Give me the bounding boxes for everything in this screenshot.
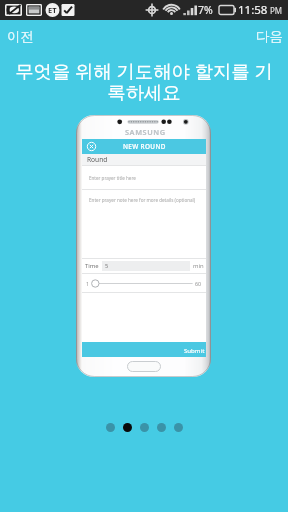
button[interactable]: 이전	[0, 20, 46, 52]
staticText: PM	[270, 5, 283, 16]
staticText: ET	[48, 5, 57, 15]
button[interactable]: Home	[127, 361, 161, 372]
staticText: Enter prayer note here for more details …	[89, 197, 196, 203]
button[interactable]: Page 3	[140, 423, 149, 432]
staticText: 이전	[7, 28, 34, 45]
staticText: Enter prayer title here	[89, 175, 136, 181]
staticText: 5	[105, 262, 109, 270]
button[interactable]: Submit	[82, 342, 206, 357]
button[interactable]: Page 1	[106, 423, 115, 432]
button[interactable]: 다음	[244, 20, 288, 52]
button[interactable]: Page 5	[174, 423, 183, 432]
staticText: min	[193, 262, 204, 270]
staticText: Time	[85, 262, 99, 270]
staticText: Submit	[184, 346, 205, 354]
button[interactable]: Page 2	[123, 423, 132, 432]
button[interactable]: Close	[86, 141, 97, 152]
staticText: 60	[195, 280, 202, 287]
staticText: 무엇을 위해 기도해야 할지를 기록하세요	[12, 58, 276, 105]
button[interactable]: Duration slider	[82, 274, 206, 292]
staticText: 다음	[256, 28, 283, 45]
button[interactable]: 5	[102, 261, 190, 271]
staticText: 1	[86, 280, 90, 287]
staticText: Round	[87, 155, 108, 164]
button[interactable]: Page 4	[157, 423, 166, 432]
staticText: 11:58	[238, 2, 268, 18]
staticText: NEW ROUND	[123, 142, 166, 151]
staticText: SAMSUNG	[125, 127, 166, 137]
staticText: 7%	[198, 3, 213, 17]
